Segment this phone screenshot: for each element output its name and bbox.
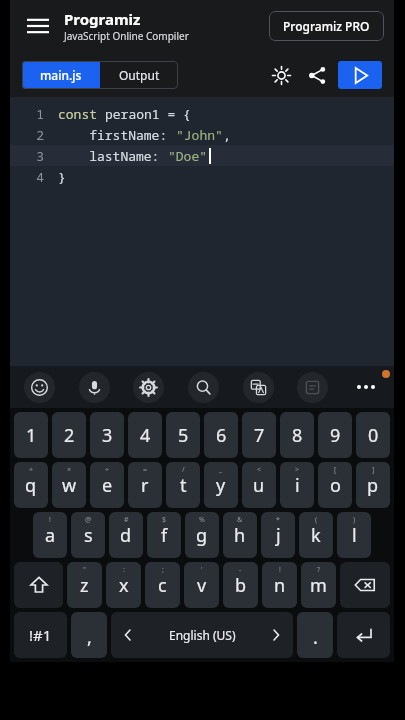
button[interactable]: 1 [14, 412, 48, 458]
button[interactable]: ] [356, 462, 390, 508]
staticText: Programiz [64, 9, 141, 29]
button[interactable]: 4 [128, 412, 162, 458]
button[interactable]: Shift [14, 562, 63, 608]
staticText: $ [162, 515, 167, 525]
button[interactable]: ? [301, 562, 336, 608]
staticText: n [274, 573, 286, 598]
button[interactable]: # [109, 512, 143, 558]
button[interactable]: & [223, 512, 257, 558]
staticText: < [257, 465, 262, 475]
button[interactable]: 5 [166, 412, 200, 458]
button[interactable]: % [185, 512, 219, 558]
button[interactable]: _ [204, 462, 238, 508]
button[interactable]: + [14, 462, 48, 508]
button[interactable]: Menu [20, 8, 56, 44]
staticText: Programiz PRO [283, 18, 370, 34]
staticText: ! [279, 565, 281, 575]
button[interactable]: ' [184, 562, 219, 608]
staticText: 3 [102, 423, 113, 448]
button[interactable]: @ [71, 512, 105, 558]
staticText: u [253, 473, 265, 498]
button[interactable]: * [261, 512, 295, 558]
staticText: English (US) [169, 627, 236, 643]
staticText: y [216, 473, 226, 498]
staticText: 1 [26, 423, 37, 448]
staticText: } [58, 168, 66, 186]
button[interactable]: Run [338, 61, 382, 89]
button[interactable]: Search [188, 372, 219, 403]
button[interactable]: , [71, 612, 107, 658]
button[interactable]: ) [337, 512, 371, 558]
staticText: p [367, 473, 379, 498]
staticText: : [123, 565, 125, 575]
staticText: " [83, 565, 86, 575]
button[interactable]: Output [100, 61, 178, 89]
button[interactable]: . [297, 612, 333, 658]
staticText: "Doe" [168, 147, 208, 165]
staticText: + [29, 465, 34, 475]
button[interactable]: English (US) [111, 612, 293, 658]
button[interactable]: Translate [243, 372, 274, 403]
staticText: 7 [254, 423, 265, 448]
button[interactable]: 7 [242, 412, 276, 458]
button[interactable]: [ [318, 462, 352, 508]
button[interactable]: / [166, 462, 200, 508]
staticText: > [295, 465, 300, 475]
button[interactable]: Theme [266, 60, 296, 90]
button[interactable]: Programiz PRO [269, 11, 384, 41]
staticText: 1 [36, 105, 44, 123]
button[interactable]: Emoji [24, 372, 55, 403]
button[interactable]: ; [145, 562, 180, 608]
staticText: 4 [140, 423, 151, 448]
staticText: & [237, 515, 243, 525]
button[interactable]: 2 [52, 412, 86, 458]
staticText: . [313, 625, 318, 650]
button[interactable]: Settings [133, 372, 164, 403]
staticText: 2 [64, 423, 75, 448]
staticText: s [84, 523, 93, 548]
button[interactable]: - [223, 562, 258, 608]
button[interactable]: ( [299, 512, 333, 558]
staticText: ] [372, 465, 375, 475]
staticText: f [161, 523, 168, 548]
button[interactable]: More options [352, 373, 380, 401]
button[interactable]: = [128, 462, 162, 508]
button[interactable]: ÷ [90, 462, 124, 508]
button[interactable]: 6 [204, 412, 238, 458]
staticText: b [235, 573, 247, 598]
button[interactable]: 9 [318, 412, 352, 458]
button[interactable]: ! [33, 512, 67, 558]
button[interactable]: Backspace [340, 562, 390, 608]
button[interactable]: : [106, 562, 141, 608]
button[interactable]: main.js [22, 61, 100, 89]
staticText: !#1 [29, 625, 52, 645]
staticText: ! [49, 515, 51, 525]
button[interactable]: $ [147, 512, 181, 558]
button[interactable]: Clipboard [297, 372, 328, 403]
button[interactable]: Enter [337, 612, 390, 658]
button[interactable]: 0 [356, 412, 390, 458]
button[interactable]: > [280, 462, 314, 508]
staticText: 5 [178, 423, 189, 448]
staticText: d [120, 523, 132, 548]
button[interactable]: ! [262, 562, 297, 608]
button[interactable]: " [67, 562, 102, 608]
button[interactable]: 3 [90, 412, 124, 458]
staticText: _ [219, 465, 223, 475]
staticText: ( [315, 515, 318, 525]
staticText: w [62, 473, 77, 498]
staticText: h [234, 523, 246, 548]
button[interactable]: Share [302, 60, 332, 90]
staticText: 8 [292, 423, 303, 448]
button[interactable]: < [242, 462, 276, 508]
button[interactable]: 8 [280, 412, 314, 458]
staticText: % [199, 515, 205, 525]
button[interactable]: × [52, 462, 86, 508]
staticText: l [352, 523, 357, 548]
staticText: , [87, 625, 92, 650]
button[interactable]: Voice input [79, 372, 110, 403]
button[interactable]: !#1 [14, 612, 67, 658]
staticText: 6 [216, 423, 227, 448]
staticText: m [310, 573, 327, 598]
staticText: , [223, 126, 231, 144]
